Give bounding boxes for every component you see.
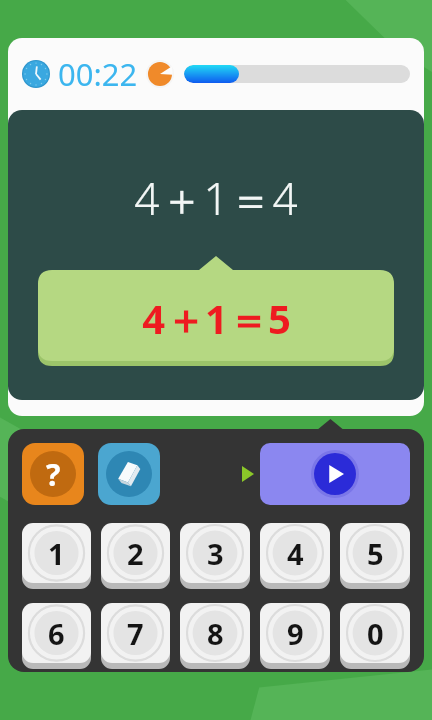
staticText: 4＋1＝4 [134, 168, 298, 228]
button[interactable]: 6 [22, 603, 91, 669]
button[interactable]: Hint [22, 443, 84, 505]
staticText: 2 [127, 534, 144, 573]
button[interactable]: Erase [98, 443, 160, 505]
staticText: ? [46, 454, 61, 495]
staticText: 5 [367, 534, 384, 573]
button[interactable]: 5 [340, 523, 410, 589]
staticText: 00:22 [58, 53, 138, 95]
button[interactable]: 2 [101, 523, 170, 589]
staticText: 7 [127, 614, 144, 653]
button[interactable]: 1 [22, 523, 91, 589]
button[interactable]: 9 [260, 603, 330, 669]
staticText: 3 [207, 534, 224, 573]
button[interactable]: Play [260, 443, 410, 505]
button[interactable]: 7 [101, 603, 170, 669]
button[interactable]: 3 [180, 523, 250, 589]
staticText: 8 [207, 614, 224, 653]
button[interactable]: 8 [180, 603, 250, 669]
button[interactable]: 0 [340, 603, 410, 669]
staticText: 1 [48, 534, 65, 573]
staticText: 0 [367, 614, 384, 653]
button[interactable]: 4 [260, 523, 330, 589]
staticText: 4 [287, 534, 304, 573]
staticText: 4＋1＝5 [142, 291, 291, 346]
staticText: 9 [287, 614, 304, 653]
staticText: 6 [48, 614, 65, 653]
